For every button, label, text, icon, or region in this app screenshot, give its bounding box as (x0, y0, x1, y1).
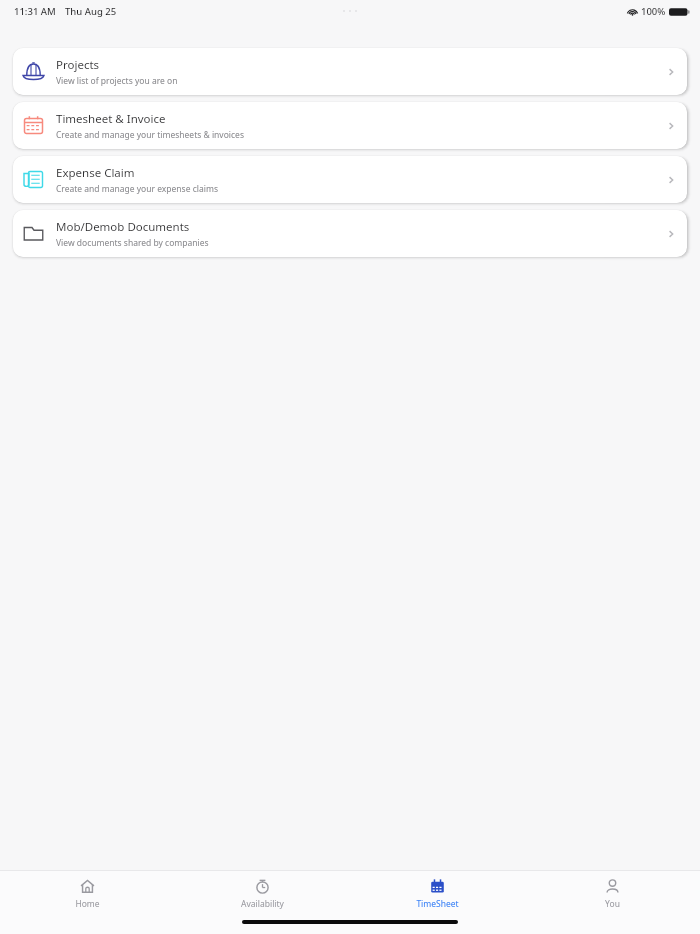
staticText: Thu Aug 25 (65, 5, 117, 18)
button[interactable]: Availability (175, 871, 350, 917)
button[interactable]: Expense Claim (13, 156, 687, 203)
staticText: 11:31 AM (14, 5, 56, 18)
button[interactable]: You (525, 871, 700, 917)
staticText: Mob/Demob Documents (56, 219, 190, 235)
button[interactable]: Mob/Demob Documents (13, 210, 687, 257)
staticText: 100% (641, 5, 666, 18)
staticText: Projects (56, 57, 100, 73)
button[interactable]: Projects (13, 48, 687, 95)
staticText: Create and manage your timesheets & invo… (56, 129, 244, 141)
staticText: TimeSheet (416, 898, 459, 910)
staticText: Expense Claim (56, 165, 135, 181)
staticText: Availability (241, 898, 284, 910)
staticText: View list of projects you are on (56, 75, 178, 87)
button[interactable]: TimeSheet (350, 871, 525, 917)
staticText: Create and manage your expense claims (56, 183, 218, 195)
button[interactable]: Home (0, 871, 175, 917)
staticText: Home (75, 898, 100, 910)
button[interactable]: Timesheet & Invoice (13, 102, 687, 149)
staticText: You (605, 898, 620, 910)
staticText: View documents shared by companies (56, 237, 209, 249)
staticText: Timesheet & Invoice (56, 111, 166, 127)
